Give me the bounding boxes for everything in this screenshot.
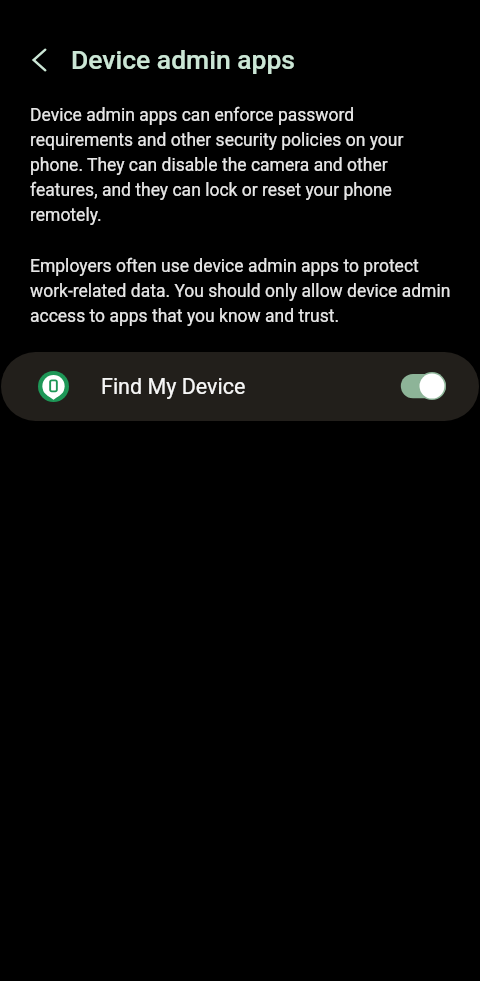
staticText: Device admin apps can enforce password r… xyxy=(30,101,454,226)
button[interactable]: Find My Device, on xyxy=(400,372,446,402)
staticText: Employers often use device admin apps to… xyxy=(30,252,454,327)
staticText: Device admin apps xyxy=(71,44,295,75)
button[interactable]: Navigate up xyxy=(15,36,63,84)
staticText: Find My Device xyxy=(101,374,246,399)
button[interactable]: Find My Device xyxy=(1,352,479,421)
